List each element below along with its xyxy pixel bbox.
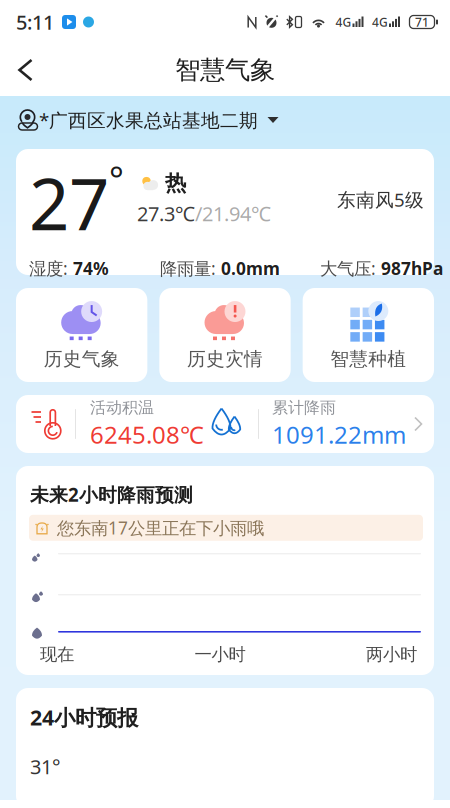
staticText: 0.0mm [221, 257, 280, 280]
staticText: 71 [415, 14, 429, 30]
button[interactable]: 历史气象 [16, 288, 147, 382]
button[interactable]: 活动积温 [16, 395, 434, 453]
staticText: 累计降雨 [272, 398, 336, 417]
button[interactable]: 智慧种植 [303, 288, 434, 382]
staticText: 31° [30, 753, 61, 780]
staticText: 4G [372, 14, 388, 30]
staticText: 5:11 [16, 9, 54, 35]
staticText: 987hPa [381, 257, 443, 280]
staticText: 降雨量: [160, 257, 221, 280]
staticText: 历史气象 [44, 347, 120, 370]
staticText: 湿度: [29, 257, 73, 280]
staticText: 智慧种植 [330, 347, 406, 370]
staticText: 两小时 [366, 644, 417, 665]
staticText: 27 [29, 156, 109, 250]
staticText: 27.3℃ [137, 200, 195, 227]
staticText: 热 [165, 170, 186, 196]
button[interactable]: Back [0, 48, 48, 91]
staticText: 未来2小时降雨预测 [30, 482, 193, 507]
staticText: 4G [335, 14, 351, 30]
staticText: 历史灾情 [187, 347, 263, 370]
staticText: 您东南17公里正在下小雨哦 [57, 516, 264, 539]
button[interactable]: 历史灾情 [159, 288, 291, 382]
button[interactable]: *广西区水果总站基地二期 [0, 102, 450, 138]
staticText: *广西区水果总站基地二期 [39, 108, 258, 132]
staticText: 大气压: [320, 257, 381, 280]
staticText: /21.94℃ [195, 200, 271, 227]
staticText: 现在 [40, 644, 74, 665]
staticText: ° [109, 156, 124, 202]
staticText: 东南风5级 [337, 187, 424, 212]
staticText: 一小时 [194, 644, 245, 665]
staticText: 24小时预报 [30, 703, 138, 731]
staticText: 活动积温 [90, 398, 154, 417]
staticText: 74% [73, 257, 109, 280]
staticText: 智慧气象 [175, 54, 275, 85]
staticText: 6245.08℃ [90, 418, 204, 450]
staticText: 1091.22mm [272, 418, 406, 450]
